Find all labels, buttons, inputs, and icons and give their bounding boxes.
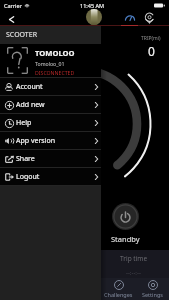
staticText: App version [16, 136, 56, 146]
button[interactable]: Profile [86, 9, 102, 25]
staticText: Add new [16, 100, 45, 110]
staticText: TRIP(mi) [141, 35, 161, 42]
staticText: TOMOLOO [35, 48, 75, 58]
staticText: Account [16, 82, 43, 92]
staticText: Challenges [104, 291, 133, 298]
button[interactable]: Add new [0, 96, 101, 113]
staticText: Logout [16, 172, 40, 182]
button[interactable]: App version [0, 132, 101, 149]
staticText: Carrier [4, 2, 22, 9]
staticText: 11:45 AM [80, 2, 104, 9]
staticText: Help [16, 118, 32, 128]
staticText: --:--:-- [126, 269, 141, 277]
button[interactable]: Settings [140, 280, 165, 298]
staticText: Share [16, 154, 35, 164]
staticText: Trip time [120, 254, 148, 263]
button[interactable]: TOMOLOO [0, 44, 101, 77]
button[interactable]: Account [0, 78, 101, 95]
button[interactable]: Location [141, 11, 157, 25]
button[interactable]: Help [0, 114, 101, 131]
staticText: DISCONNECTED [35, 69, 75, 76]
staticText: 0 [148, 43, 155, 59]
staticText: SCOOTER [6, 30, 37, 40]
button[interactable]: Dashboard [122, 11, 138, 25]
button[interactable]: Standby power [112, 203, 139, 230]
button[interactable]: Back [3, 11, 20, 28]
staticText: Settings [142, 291, 163, 298]
button[interactable]: Share [0, 150, 101, 167]
staticText: Standby [111, 234, 140, 244]
button[interactable]: Logout [0, 168, 101, 185]
button[interactable]: Challenges [102, 280, 135, 298]
staticText: Tomoloo_01 [35, 60, 65, 67]
